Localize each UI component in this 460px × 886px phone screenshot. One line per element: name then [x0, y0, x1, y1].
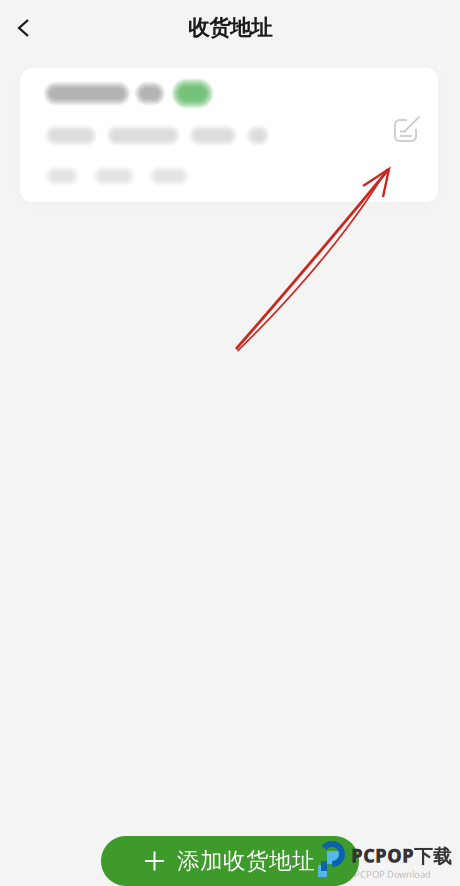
button[interactable]: 添加收货地址: [101, 836, 359, 886]
button[interactable]: [20, 68, 438, 202]
staticText: PCPOP Download: [354, 868, 431, 880]
staticText: 收货地址: [188, 15, 272, 41]
staticText: 添加收货地址: [177, 847, 315, 875]
staticText: PCPOP下载: [351, 843, 452, 868]
button[interactable]: Back: [0, 8, 48, 48]
